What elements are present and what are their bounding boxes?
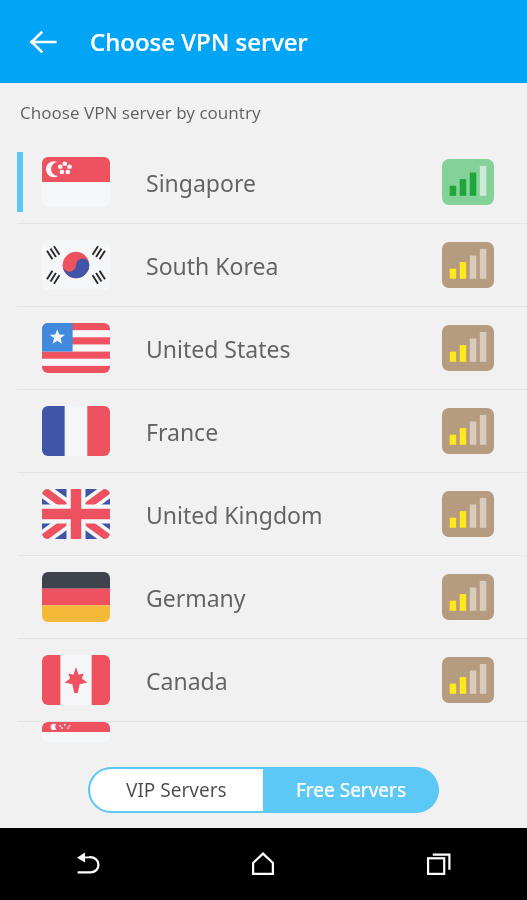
button[interactable]: Germany [0, 556, 527, 638]
button[interactable]: Singapore [0, 141, 527, 223]
staticText: Singapore [146, 167, 256, 198]
button[interactable]: France [0, 390, 527, 472]
button[interactable]: VIP Servers [90, 769, 263, 811]
staticText: France [146, 416, 219, 447]
button[interactable]: Canada [0, 639, 527, 721]
staticText: South Korea [146, 250, 279, 281]
staticText: Free Servers [296, 777, 407, 803]
staticText: Canada [146, 665, 228, 696]
button[interactable]: United States [0, 307, 527, 389]
button[interactable]: United Kingdom [0, 473, 527, 555]
staticText: United Kingdom [146, 499, 323, 530]
staticText: Germany [146, 582, 246, 613]
staticText: United States [146, 333, 291, 364]
button[interactable] [0, 722, 527, 742]
button[interactable]: Recent apps [408, 833, 470, 895]
button[interactable]: South Korea [0, 224, 527, 306]
button[interactable]: Back [19, 18, 67, 66]
staticText: Choose VPN server [90, 25, 308, 58]
button[interactable]: Free Servers [263, 767, 439, 813]
button[interactable]: Home [232, 833, 294, 895]
staticText: Choose VPN server by country [20, 101, 261, 124]
button[interactable]: Back [57, 833, 119, 895]
staticText: VIP Servers [126, 777, 227, 803]
